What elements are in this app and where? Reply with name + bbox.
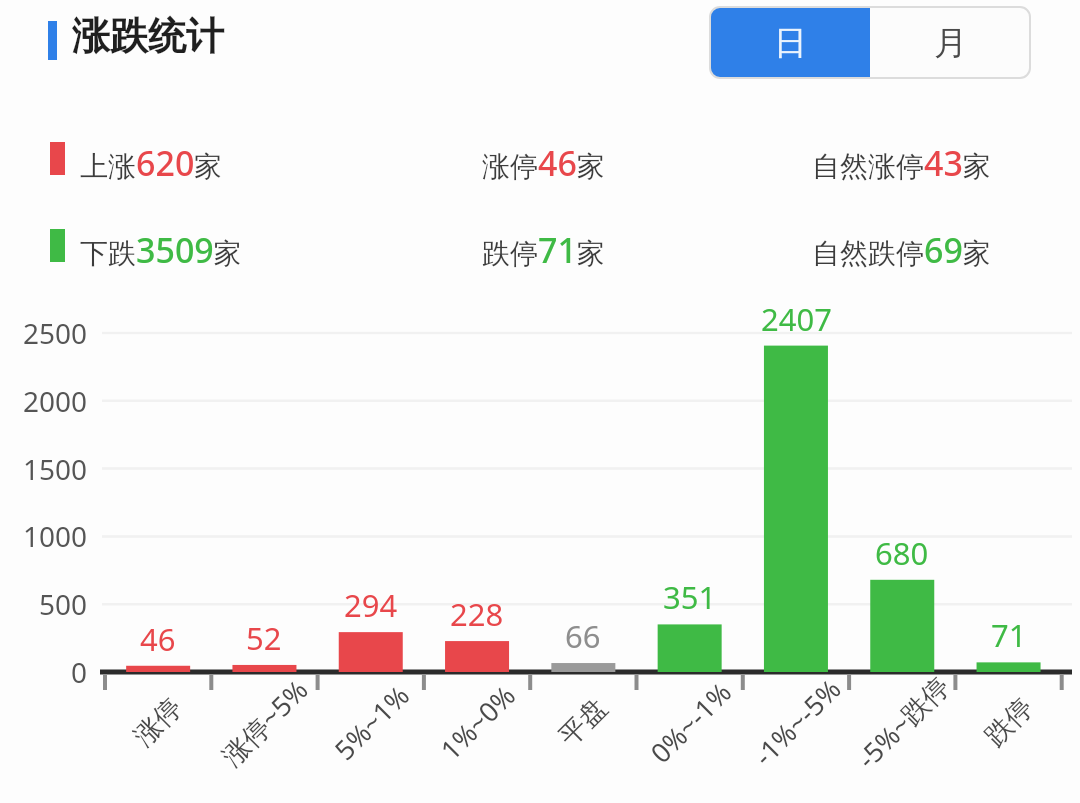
staticText: 自然涨停43家 <box>812 140 991 186</box>
staticText: 涨停 <box>127 691 189 753</box>
button[interactable]: 日 <box>710 7 870 78</box>
staticText: 日 <box>774 22 807 64</box>
staticText: 涨停46家 <box>482 140 605 186</box>
staticText: 294 <box>344 584 398 626</box>
staticText: 680 <box>875 532 929 574</box>
staticText: 0%~-1% <box>642 674 739 771</box>
staticText: 0 <box>71 653 88 691</box>
staticText: 涨停~5% <box>213 671 316 774</box>
staticText: 下跌3509家 <box>80 227 242 273</box>
staticText: 自然跌停69家 <box>812 227 991 273</box>
staticText: 500 <box>39 585 88 623</box>
staticText: 71 <box>991 614 1027 656</box>
staticText: 月 <box>934 22 967 64</box>
staticText: 跌停71家 <box>482 227 605 273</box>
staticText: 上涨620家 <box>80 140 223 186</box>
staticText: 跌停 <box>978 691 1040 753</box>
staticText: 351 <box>663 576 717 618</box>
staticText: -5%~跌停 <box>848 668 957 776</box>
staticText: 1500 <box>23 450 88 488</box>
staticText: 平盘 <box>552 691 614 753</box>
staticText: 涨跌统计 <box>72 12 224 60</box>
staticText: -1%~-5% <box>745 670 848 774</box>
staticText: 5%~1% <box>326 677 417 768</box>
staticText: 52 <box>246 617 282 659</box>
staticText: 228 <box>450 593 504 635</box>
staticText: 66 <box>565 615 601 657</box>
staticText: 2407 <box>761 298 832 340</box>
staticText: 1%~0% <box>432 677 523 768</box>
button[interactable]: 月 <box>870 7 1030 78</box>
staticText: 2500 <box>23 314 88 352</box>
staticText: 2000 <box>23 382 88 420</box>
staticText: 1000 <box>23 517 88 555</box>
staticText: 46 <box>140 618 176 660</box>
